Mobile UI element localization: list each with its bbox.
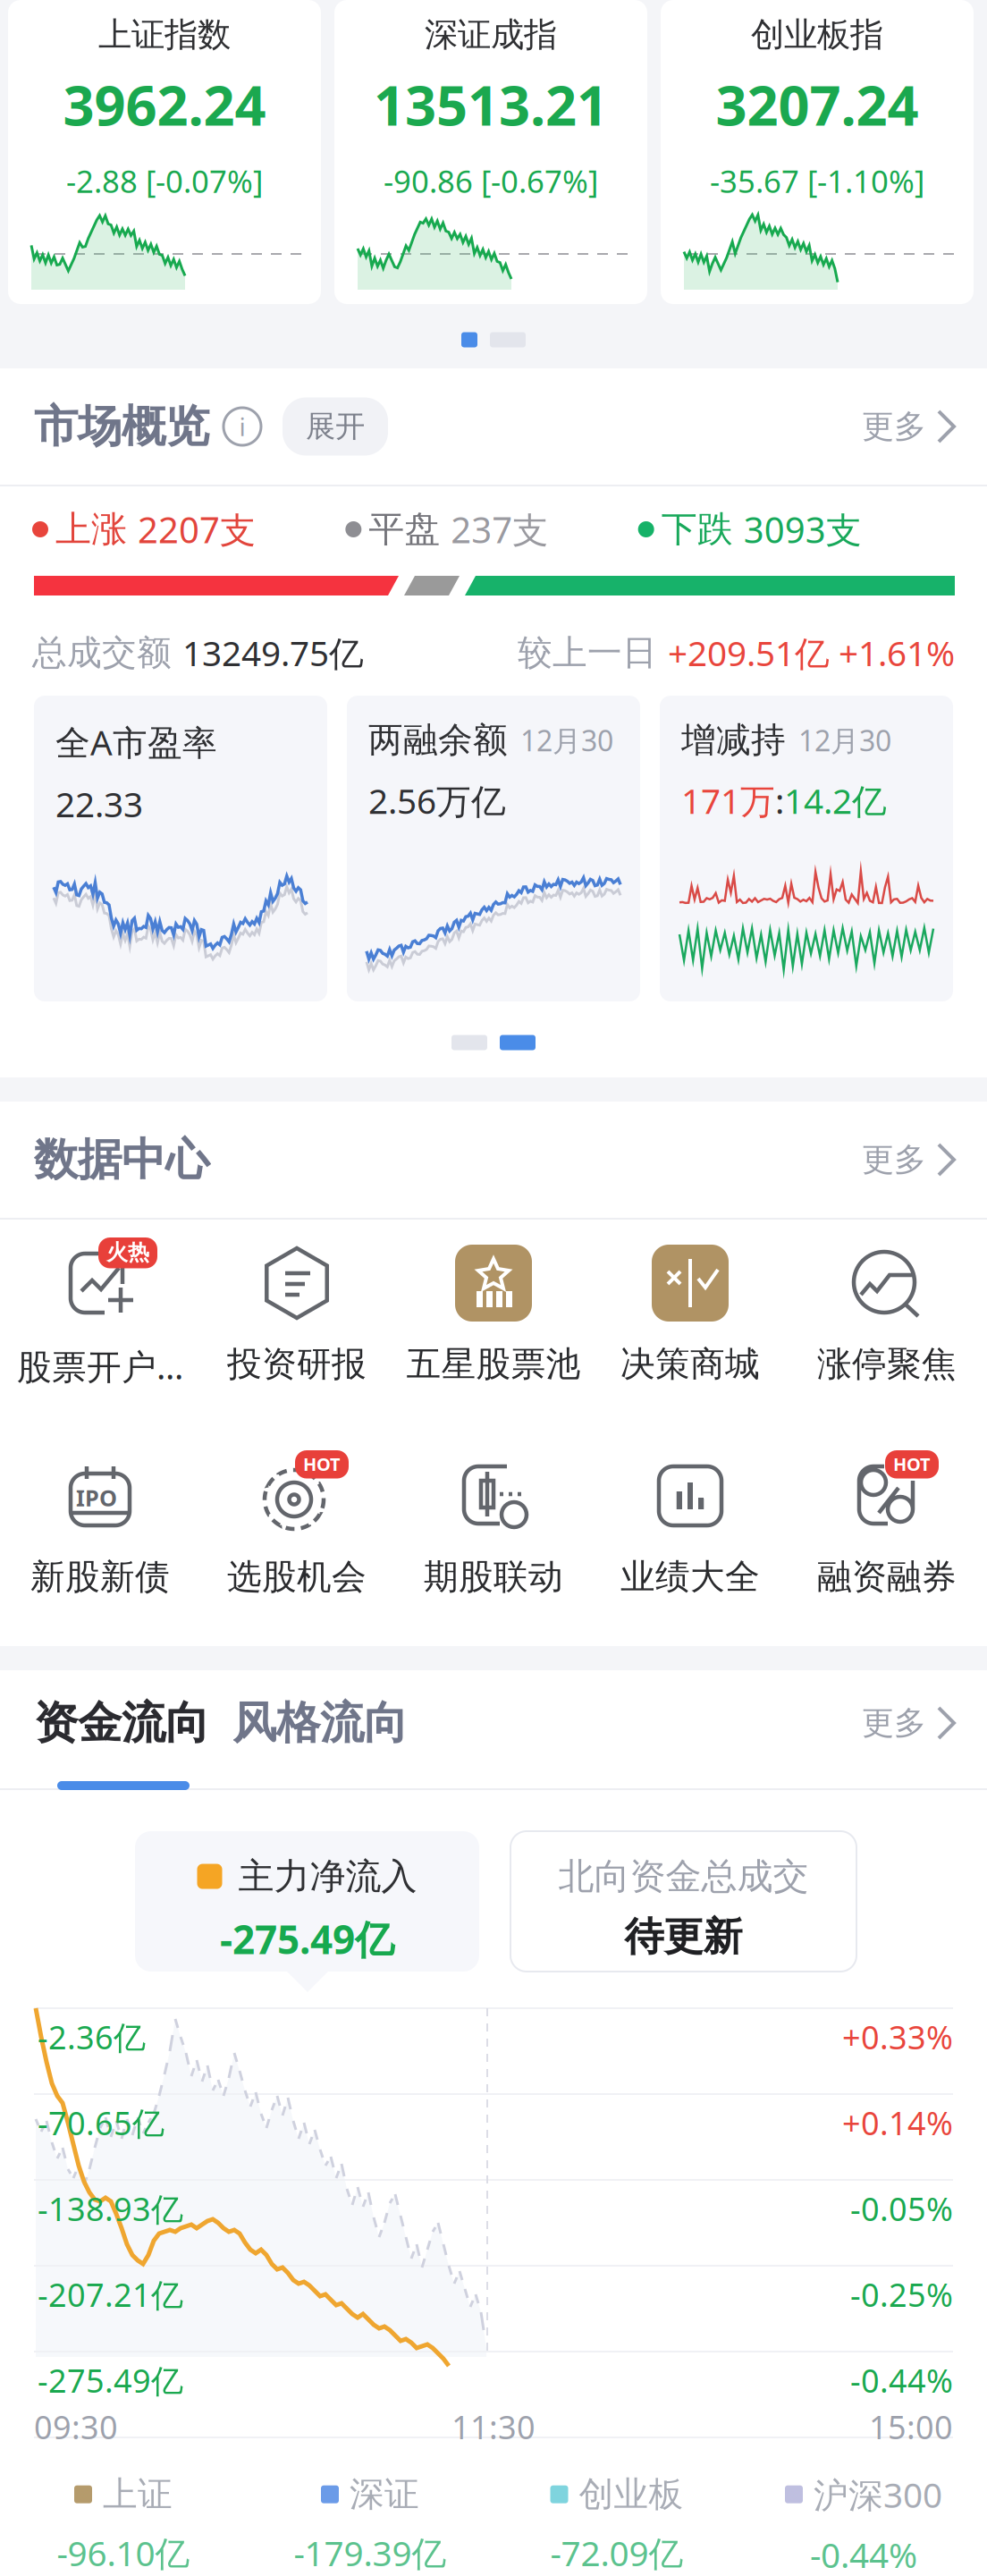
staticText: 投资研报: [227, 1343, 367, 1385]
staticText: 全A市盈率: [55, 719, 217, 765]
button[interactable]: 火热: [2, 1220, 198, 1432]
staticText: 展开: [306, 408, 365, 445]
staticText: 数据中心: [34, 1133, 209, 1187]
staticText: -2.36亿: [38, 2015, 146, 2058]
staticText: 上证: [103, 2473, 173, 2516]
button[interactable]: 期股联动: [395, 1432, 592, 1645]
staticText: 上证指数: [98, 14, 231, 55]
staticText: 平盘: [369, 507, 451, 551]
staticText: -0.25%: [850, 2273, 953, 2316]
staticText: 3207.24: [716, 68, 919, 141]
staticText: -35.67 [-1.10%]: [710, 160, 924, 201]
staticText: 更多: [862, 407, 926, 446]
staticText: 12月30: [798, 721, 891, 759]
staticText: -179.39亿: [294, 2530, 447, 2576]
staticText: 创业板指: [751, 14, 883, 55]
staticText: -70.65亿: [38, 2101, 164, 2144]
staticText: 主力净流入: [238, 1854, 417, 1898]
staticText: 更多: [862, 1140, 926, 1179]
button[interactable]: HOT: [789, 1432, 985, 1645]
staticText: 创业板: [579, 2473, 683, 2516]
staticText: 五星股票池: [406, 1343, 581, 1385]
staticText: -275.49亿: [220, 1913, 394, 1965]
button[interactable]: 涨停聚焦: [789, 1220, 985, 1432]
staticText: -207.21亿: [38, 2273, 183, 2316]
staticText: 选股机会: [227, 1556, 367, 1598]
staticText: 12月30: [520, 721, 613, 759]
staticText: 2207支: [138, 506, 256, 553]
staticText: 融资融券: [817, 1556, 957, 1598]
staticText: -2.88 [-0.07%]: [66, 160, 263, 201]
button[interactable]: 更多: [862, 1140, 958, 1179]
staticText: 两融余额: [368, 719, 508, 761]
staticText: 下跌: [661, 507, 744, 551]
staticText: 火热: [106, 1239, 149, 1266]
staticText: -72.09亿: [550, 2530, 683, 2576]
staticText: 22.33: [55, 781, 143, 827]
staticText: 待更新: [624, 1913, 742, 1961]
staticText: 171万: [681, 777, 775, 823]
staticText: 沪深300: [814, 2471, 942, 2517]
button[interactable]: 风格流向: [209, 1696, 408, 1750]
staticText: 09:30: [34, 2405, 118, 2448]
staticText: :: [775, 777, 784, 823]
button[interactable]: HOT: [198, 1432, 395, 1645]
button[interactable]: 资金流向: [34, 1696, 209, 1750]
staticText: -90.86 [-0.67%]: [384, 160, 598, 201]
staticText: 北向资金总成交: [558, 1854, 809, 1898]
staticText: -0.05%: [850, 2187, 953, 2230]
staticText: 资金流向: [34, 1696, 209, 1750]
button[interactable]: 深证成指: [334, 0, 647, 304]
button[interactable]: 展开: [283, 397, 388, 455]
staticText: HOT: [893, 1452, 931, 1476]
staticText: 15:00: [869, 2405, 953, 2448]
staticText: +0.33%: [842, 2015, 953, 2058]
staticText: 深证: [350, 2473, 419, 2516]
button[interactable]: 主力净流入: [135, 1831, 479, 1972]
staticText: 深证成指: [425, 14, 557, 55]
staticText: 风格流向: [232, 1696, 408, 1750]
staticText: 涨停聚焦: [817, 1343, 957, 1385]
button[interactable]: 更多: [862, 407, 958, 446]
button[interactable]: 投资研报: [198, 1220, 395, 1432]
staticText: 业绩大全: [620, 1556, 760, 1598]
staticText: 上涨: [55, 507, 138, 551]
staticText: 新股新债: [30, 1556, 170, 1598]
button[interactable]: 北向资金总成交: [510, 1831, 856, 1972]
staticText: 13249.75亿: [182, 630, 364, 676]
staticText: 总成交额: [32, 632, 182, 674]
staticText: 市场概览: [34, 399, 209, 454]
staticText: 237支: [451, 506, 548, 553]
staticText: 更多: [862, 1703, 926, 1743]
staticText: 增减持: [681, 719, 786, 761]
staticText: +209.51亿 +1.61%: [668, 630, 955, 676]
staticText: 决策商城: [620, 1343, 760, 1385]
button[interactable]: 上证指数: [8, 0, 321, 304]
button[interactable]: IPO: [2, 1432, 198, 1645]
staticText: 较上一日: [518, 632, 668, 674]
staticText: 股票开户...: [17, 1343, 183, 1389]
staticText: -138.93亿: [38, 2187, 183, 2230]
button[interactable]: 决策商城: [592, 1220, 789, 1432]
staticText: -275.49亿: [38, 2359, 183, 2402]
staticText: 13513.21: [374, 68, 608, 141]
staticText: -0.44%: [810, 2532, 917, 2576]
button[interactable]: 业绩大全: [592, 1432, 789, 1645]
staticText: 11:30: [451, 2405, 536, 2448]
button[interactable]: 增减持: [660, 696, 953, 1001]
staticText: HOT: [303, 1452, 341, 1476]
button[interactable]: 全A市盈率: [34, 696, 327, 1001]
button[interactable]: 更多: [862, 1703, 958, 1743]
staticText: -96.10亿: [57, 2530, 190, 2576]
staticText: +0.14%: [842, 2101, 953, 2144]
staticText: IPO: [76, 1482, 117, 1513]
button[interactable]: 创业板指: [661, 0, 974, 304]
staticText: 2.56万亿: [368, 777, 506, 823]
staticText: i: [239, 410, 245, 443]
staticText: 3093支: [744, 506, 862, 553]
button[interactable]: 两融余额: [347, 696, 640, 1001]
staticText: 期股联动: [424, 1556, 563, 1598]
staticText: -0.44%: [850, 2359, 953, 2402]
button[interactable]: 五星股票池: [395, 1220, 592, 1432]
staticText: 3962.24: [63, 68, 266, 141]
